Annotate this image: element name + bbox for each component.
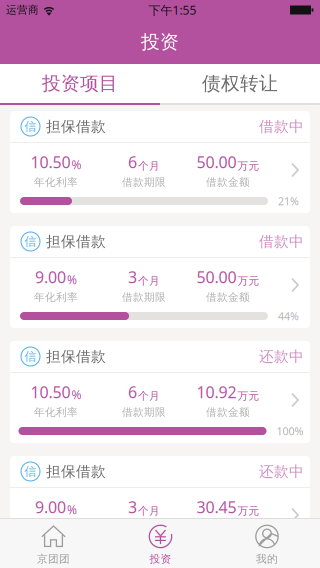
staticText: 借款期限 [122,176,166,189]
staticText: 100% [276,424,303,438]
staticText: 年化利率 [34,176,78,189]
staticText: 3 [128,266,137,287]
staticText: 个月 [138,274,160,288]
staticText: 个月 [138,504,160,518]
staticText: 借款期限 [122,291,166,304]
staticText: 信 [24,119,36,134]
staticText: 9.00 [35,496,66,517]
staticText: % [67,272,77,287]
staticText: % [67,502,77,517]
staticText: 年化利率 [34,406,78,419]
staticText: 债权转让 [202,72,278,95]
staticText: 下午1:55 [148,2,196,18]
staticText: 3 [128,496,137,517]
button[interactable]: 信 [10,111,310,213]
staticText: 借款期限 [122,521,166,534]
button[interactable]: 债权转让 [160,64,320,105]
staticText: 借款中 [259,232,304,250]
staticText: 万元 [237,504,259,518]
staticText: 10.50 [30,151,70,172]
staticText: 担保借款 [46,232,106,250]
staticText: 信 [24,464,36,479]
button[interactable]: 信 [10,341,310,443]
staticText: % [71,387,81,402]
staticText: 担保借款 [46,462,106,480]
staticText: 担保借款 [46,347,106,365]
staticText: 万元 [237,159,259,173]
staticText: 借款金额 [206,176,250,189]
staticText: 借款中 [259,117,304,135]
staticText: 21% [278,194,299,208]
staticText: 借款期限 [122,406,166,419]
staticText: 10.50 [30,381,70,402]
staticText: 个月 [138,389,160,403]
staticText: 9.00 [35,266,66,287]
staticText: 借款金额 [206,406,250,419]
staticText: 6 [128,151,137,172]
staticText: 京团团 [37,552,70,565]
button[interactable]: 信 [10,226,310,328]
staticText: 50.00 [196,266,236,287]
staticText: 50.00 [196,151,236,172]
staticText: % [71,157,81,172]
staticText: 我的 [256,552,278,565]
button[interactable]: 投资项目 [0,64,160,105]
staticText: 投资项目 [42,72,118,95]
button[interactable]: 我的 [214,519,320,568]
button[interactable]: 信 [10,456,310,558]
staticText: 44% [278,309,299,323]
staticText: 投资 [149,552,171,565]
staticText: 年化利率 [34,291,78,304]
staticText: 万元 [237,389,259,403]
staticText: 信 [24,234,36,249]
staticText: 借款金额 [206,291,250,304]
staticText: 10.92 [196,381,236,402]
staticText: 万元 [237,274,259,288]
staticText: 还款中 [259,347,304,365]
staticText: 年化利率 [34,521,78,534]
staticText: 担保借款 [46,117,106,135]
staticText: 6 [128,381,137,402]
staticText: 运营商 [6,3,39,16]
staticText: 30.45 [196,496,236,517]
staticText: 投资 [141,30,179,53]
button[interactable]: 投资 [107,519,214,568]
button[interactable]: 京团团 [0,519,107,568]
staticText: 还款中 [259,462,304,480]
staticText: 信 [24,349,36,364]
staticText: 个月 [138,159,160,173]
